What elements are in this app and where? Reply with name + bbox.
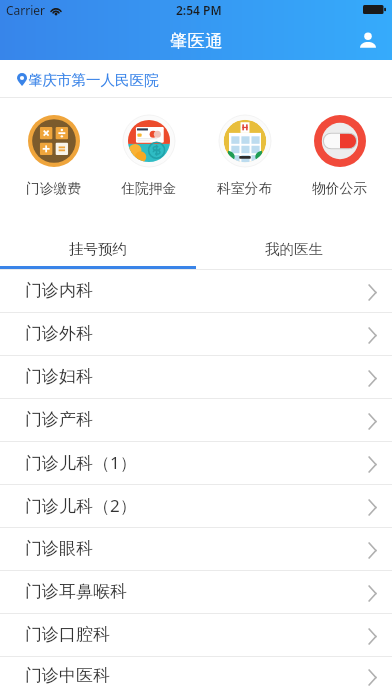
staticText: 肇医通 bbox=[170, 30, 223, 52]
staticText: 门诊产科 bbox=[25, 409, 93, 430]
staticText: 住院押金 bbox=[121, 180, 177, 197]
staticText: 门诊儿科（1） bbox=[25, 451, 137, 474]
button[interactable]: 我的医生 bbox=[196, 216, 392, 270]
staticText: 门诊儿科（2） bbox=[25, 494, 137, 517]
staticText: 门诊内科 bbox=[25, 280, 93, 301]
staticText: 肇庆市第一人民医院 bbox=[28, 71, 159, 89]
staticText: 门诊中医科 bbox=[25, 665, 110, 686]
staticText: 门诊耳鼻喉科 bbox=[25, 581, 127, 602]
staticText: 门诊妇科 bbox=[25, 366, 93, 387]
staticText: 科室分布 bbox=[217, 180, 273, 197]
staticText: 我的医生 bbox=[265, 240, 323, 258]
staticText: 挂号预约 bbox=[69, 240, 127, 258]
staticText: 2:54 PM bbox=[176, 2, 222, 18]
button[interactable]: 物价公示 bbox=[300, 115, 380, 197]
button[interactable]: 肇庆市第一人民医院 bbox=[0, 60, 392, 97]
button[interactable]: 科室分布 bbox=[205, 115, 285, 197]
button[interactable]: User profile bbox=[354, 26, 382, 54]
button[interactable]: 门诊产科 bbox=[0, 399, 392, 441]
button[interactable]: 门诊口腔科 bbox=[0, 614, 392, 656]
button[interactable]: 门诊内科 bbox=[0, 270, 392, 312]
button[interactable]: 门诊儿科（1） bbox=[0, 442, 392, 484]
button[interactable]: 住院押金 bbox=[109, 115, 189, 197]
button[interactable]: 门诊中医科 bbox=[0, 657, 392, 696]
staticText: 门诊缴费 bbox=[26, 180, 82, 197]
button[interactable]: 门诊儿科（2） bbox=[0, 485, 392, 527]
button[interactable]: 门诊缴费 bbox=[14, 115, 94, 197]
staticText: 门诊眼科 bbox=[25, 538, 93, 559]
staticText: 门诊外科 bbox=[25, 323, 93, 344]
button[interactable]: 门诊耳鼻喉科 bbox=[0, 571, 392, 613]
staticText: Carrier bbox=[6, 2, 46, 18]
button[interactable]: 门诊妇科 bbox=[0, 356, 392, 398]
button[interactable]: 门诊外科 bbox=[0, 313, 392, 355]
button[interactable]: 门诊眼科 bbox=[0, 528, 392, 570]
staticText: 门诊口腔科 bbox=[25, 624, 110, 645]
staticText: 物价公示 bbox=[312, 180, 368, 197]
button[interactable]: 挂号预约 bbox=[0, 216, 196, 270]
